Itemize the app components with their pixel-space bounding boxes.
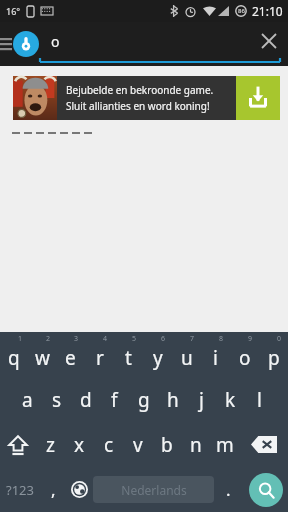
button[interactable]: a [13,377,42,422]
staticText: c [104,432,114,458]
staticText: 86 [238,7,245,15]
staticText: e [65,345,76,371]
button[interactable]: Change language [66,467,93,512]
staticText: Bejubelde en bekroonde game. [66,83,214,97]
staticText: b [161,432,173,458]
staticText: 9 [248,334,253,344]
button[interactable]: h [158,377,187,422]
staticText: Sluit allianties en word koning! [66,99,210,113]
button[interactable]: f [100,377,129,422]
staticText: i [213,345,218,371]
staticText: o [239,345,251,371]
staticText: k [225,387,236,413]
staticText: Nederlands [121,482,187,498]
staticText: g [138,387,150,413]
staticText: u [181,345,193,371]
staticText: 16° [6,5,21,17]
staticText: h [167,387,179,413]
button[interactable]: c [94,422,123,467]
staticText: s [52,387,62,413]
staticText: t [125,345,132,371]
staticText: 4 [103,334,108,344]
button[interactable]: Menu [0,22,14,66]
staticText: w [35,345,50,371]
staticText: r [96,345,104,371]
button[interactable]: n [181,422,210,467]
staticText: ?123 [6,481,34,499]
staticText: o [51,32,60,51]
staticText: n [190,432,202,458]
staticText: z [46,432,55,458]
button[interactable]: 1 [0,332,28,377]
staticText: 8 [219,334,224,344]
button[interactable]: d [71,377,100,422]
staticText: , [51,478,56,501]
button[interactable]: 0 [259,332,288,377]
button[interactable]: Backspace [239,422,288,467]
staticText: m [216,432,234,458]
button[interactable]: Shift [0,422,36,467]
staticText: l [257,387,262,413]
button[interactable]: 2 [28,332,56,377]
button[interactable]: v [123,422,152,467]
button[interactable]: Clear [250,22,288,60]
staticText: q [8,345,20,371]
button[interactable]: 7 [172,332,201,377]
button[interactable]: 4 [85,332,114,377]
button[interactable]: g [129,377,158,422]
staticText: 0 [277,334,282,344]
button[interactable]: 9 [230,332,259,377]
staticText: d [80,387,92,413]
staticText: p [268,345,280,371]
button[interactable]: App icon [13,31,39,57]
staticText: 3 [74,334,79,344]
button[interactable]: Download [236,76,280,120]
button[interactable]: l [245,377,274,422]
button[interactable]: b [152,422,181,467]
button[interactable]: x [65,422,94,467]
staticText: . [226,478,231,501]
button[interactable]: z [36,422,65,467]
button[interactable]: Search [249,473,283,507]
staticText: 1 [18,334,23,344]
staticText: 21:10 [252,3,283,19]
button[interactable]: 3 [56,332,85,377]
staticText: 6 [161,334,166,344]
button[interactable]: 8 [201,332,230,377]
button[interactable]: ?123 [0,467,40,512]
button[interactable]: j [187,377,216,422]
button[interactable]: m [210,422,239,467]
button[interactable]: k [216,377,245,422]
button[interactable]: Nederlands [93,476,214,503]
staticText: j [199,387,204,413]
staticText: 5 [132,334,137,344]
button[interactable]: Bejubelde en bekroonde game. [13,76,280,120]
staticText: 2 [46,334,51,344]
staticText: y [153,345,163,371]
staticText: 7 [190,334,195,344]
button[interactable]: . [214,467,243,512]
button[interactable]: 6 [143,332,172,377]
button[interactable]: s [42,377,71,422]
staticText: a [22,387,33,413]
button[interactable]: , [40,467,66,512]
button[interactable]: 5 [114,332,143,377]
staticText: v [133,432,143,458]
staticText: f [111,387,118,413]
staticText: x [74,432,85,458]
